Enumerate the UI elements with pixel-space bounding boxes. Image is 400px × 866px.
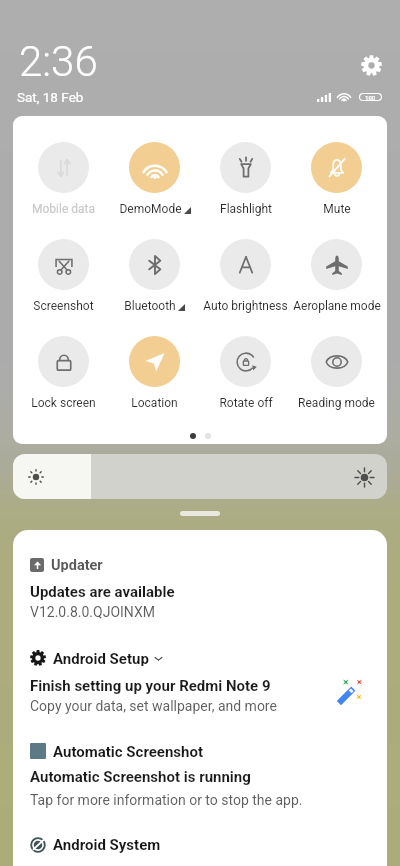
staticText: Copy your data, set wallpaper, and more	[30, 698, 277, 714]
staticText: DemoMode	[119, 202, 182, 216]
staticText: Aeroplane mode	[293, 299, 381, 313]
staticText: 2:36	[19, 37, 98, 86]
button[interactable]: Flashlight	[200, 142, 291, 232]
staticText: Finish setting up your Redmi Note 9	[30, 677, 271, 695]
staticText: Location	[131, 396, 178, 410]
staticText: Updater	[51, 557, 103, 572]
button[interactable]: Updater	[30, 557, 103, 572]
staticText: Reading mode	[298, 396, 375, 410]
staticText: Android Setup	[53, 650, 149, 666]
button[interactable]: Mobile data	[18, 142, 109, 232]
button[interactable]: Aeroplane mode	[291, 239, 382, 329]
button[interactable]: Mute	[291, 142, 382, 232]
staticText: Sat, 18 Feb	[17, 89, 84, 105]
button[interactable]: Settings	[356, 50, 387, 81]
staticText: Updates are available	[30, 583, 175, 601]
button[interactable]: Reading mode	[291, 336, 382, 426]
button[interactable]: Automatic Screenshot	[30, 743, 204, 759]
staticText: Android System	[53, 836, 161, 853]
button[interactable]: Rotate off	[200, 336, 291, 426]
button[interactable]: Location	[109, 336, 200, 426]
staticText: Flashlight	[220, 202, 272, 216]
staticText: Lock screen	[31, 396, 96, 410]
staticText: Tap for more information or to stop the …	[30, 792, 303, 808]
staticText: Automatic Screenshot is running	[30, 768, 251, 786]
button[interactable]	[13, 454, 387, 499]
staticText: Rotate off	[219, 396, 273, 410]
staticText: Mute	[323, 202, 351, 216]
staticText: 100	[365, 94, 376, 101]
button[interactable]: Auto brightness	[200, 239, 291, 329]
button[interactable]: Lock screen	[18, 336, 109, 426]
button[interactable]: Bluetooth	[109, 239, 200, 329]
staticText: Bluetooth	[124, 299, 176, 313]
button[interactable]: Android Setup	[30, 650, 163, 666]
staticText: Screenshot	[33, 299, 94, 313]
staticText: V12.0.8.0.QJOINXM	[30, 604, 155, 620]
staticText: Auto brightness	[203, 299, 288, 313]
staticText: Mobile data	[32, 202, 95, 216]
button[interactable]: Android System	[30, 836, 161, 853]
staticText: Automatic Screenshot	[53, 743, 204, 759]
button[interactable]: Screenshot	[18, 239, 109, 329]
button[interactable]: DemoMode	[109, 142, 200, 232]
